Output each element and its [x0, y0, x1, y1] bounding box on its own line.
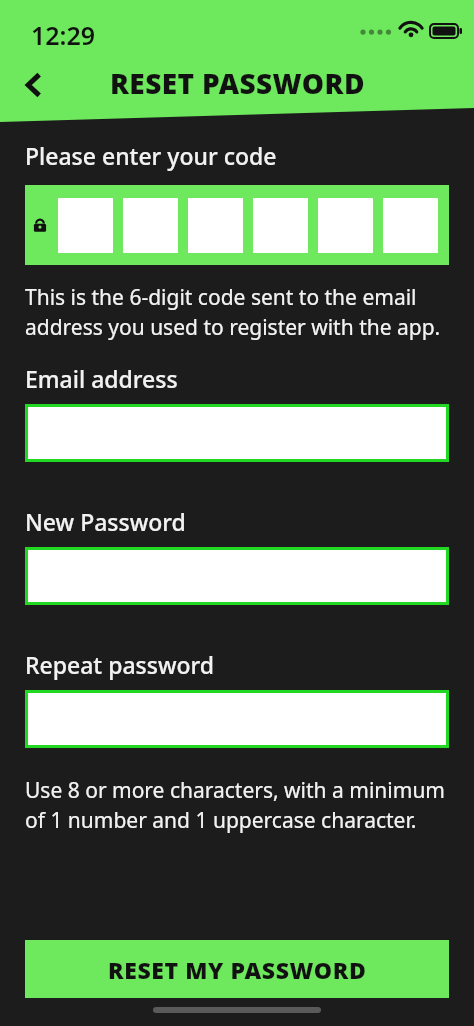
button[interactable]: Back: [10, 62, 56, 108]
button[interactable]: [25, 404, 449, 462]
staticText: RESET PASSWORD: [110, 64, 365, 102]
button[interactable]: [25, 690, 449, 748]
staticText: Use 8 or more characters, with a minimum…: [25, 776, 449, 834]
button[interactable]: [25, 547, 449, 605]
staticText: Please enter your code: [25, 140, 277, 171]
button[interactable]: Enter 6 digit code: [25, 185, 449, 265]
staticText: Email address: [25, 363, 178, 394]
staticText: RESET MY PASSWORD: [108, 954, 367, 985]
staticText: This is the 6-digit code sent to the ema…: [25, 283, 449, 341]
staticText: Repeat password: [25, 649, 215, 680]
button[interactable]: RESET MY PASSWORD: [25, 940, 449, 998]
staticText: New Password: [25, 506, 186, 537]
staticText: 12:29: [31, 18, 96, 52]
